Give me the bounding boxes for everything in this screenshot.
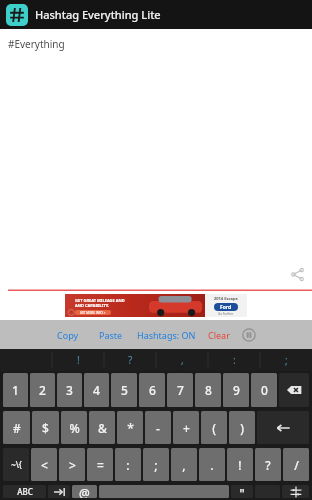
- button[interactable]: =: [87, 448, 113, 481]
- staticText: ;: [285, 353, 288, 367]
- staticText: :: [126, 457, 130, 473]
- staticText: ~\{: [11, 459, 22, 470]
- staticText: (: [212, 420, 216, 436]
- staticText: Copy: [57, 329, 79, 341]
- button[interactable]: ?: [104, 349, 156, 371]
- button[interactable]: 1: [3, 373, 28, 407]
- staticText: Hashtags: ON: [137, 329, 196, 341]
- button[interactable]: Keyboard settings: [282, 485, 309, 498]
- button[interactable]: /: [283, 448, 309, 481]
- staticText: -: [156, 420, 160, 436]
- staticText: GET MORE INFO >: [80, 311, 106, 315]
- button[interactable]: Enter: [257, 411, 309, 444]
- button[interactable]: <: [31, 448, 57, 481]
- staticText: 5: [121, 382, 128, 398]
- button[interactable]: ABC: [3, 485, 46, 498]
- button[interactable]: 4: [84, 373, 109, 407]
- button[interactable]: Advertisement: [65, 294, 247, 317]
- staticText: Paste: [99, 329, 123, 341]
- button[interactable]: ;: [260, 349, 312, 371]
- staticText: ABC: [17, 486, 33, 497]
- staticText: %: [69, 420, 80, 436]
- button[interactable]: (: [201, 411, 227, 444]
- button[interactable]: #: [3, 411, 30, 444]
- button[interactable]: $: [32, 411, 59, 444]
- button[interactable]: Hashtags: ON: [135, 325, 198, 345]
- staticText: AND CAPABILITY.: [75, 303, 110, 308]
- button[interactable]: &: [89, 411, 115, 444]
- staticText: $: [42, 420, 49, 436]
- staticText: 7: [177, 382, 184, 398]
- button[interactable]: 8: [195, 373, 221, 407]
- staticText: 1: [12, 382, 19, 398]
- button[interactable]: ~\{: [3, 448, 29, 481]
- staticText: 2014 Escape: [214, 296, 238, 301]
- staticText: .: [210, 457, 214, 473]
- staticText: GET GREAT MILEAGE AND: [75, 298, 125, 303]
- staticText: @: [79, 485, 90, 498]
- staticText: ?: [265, 457, 271, 473]
- staticText: Hashtag Everything Lite: [35, 7, 161, 22]
- staticText: #Everything: [8, 37, 65, 51]
- staticText: :: [233, 353, 236, 367]
- staticText: ,: [181, 353, 184, 367]
- button[interactable]: .: [199, 448, 225, 481]
- button[interactable]: 0: [251, 373, 277, 407]
- button[interactable]: %: [61, 411, 87, 444]
- staticText: !: [238, 457, 242, 473]
- button[interactable]: Tab: [48, 485, 70, 498]
- button[interactable]: Backspace: [279, 373, 309, 407]
- staticText: <: [41, 457, 48, 473]
- staticText: ;: [154, 457, 158, 473]
- button[interactable]: >: [59, 448, 85, 481]
- staticText: 2: [39, 382, 46, 398]
- button[interactable]: Copy: [55, 325, 81, 345]
- staticText: >: [69, 457, 76, 473]
- button[interactable]: +: [173, 411, 199, 444]
- staticText: 4: [93, 382, 100, 398]
- button[interactable]: !: [227, 448, 253, 481]
- button[interactable]: ;: [143, 448, 169, 481]
- button[interactable]: ): [229, 411, 255, 444]
- button[interactable]: !: [52, 349, 104, 371]
- button[interactable]: 3: [57, 373, 82, 407]
- button[interactable]: ,: [156, 349, 208, 371]
- button[interactable]: 7: [167, 373, 193, 407]
- button[interactable]: -: [145, 411, 171, 444]
- button[interactable]: More options: [240, 326, 258, 344]
- button[interactable]: :: [208, 349, 260, 371]
- button[interactable]: Paste: [97, 325, 125, 345]
- staticText: Go Further: [218, 312, 234, 316]
- staticText: +: [183, 420, 190, 436]
- staticText: Clear: [208, 329, 230, 341]
- staticText: Ford: [220, 304, 232, 311]
- staticText: ?: [128, 353, 133, 367]
- staticText: 6: [149, 382, 156, 398]
- staticText: 3: [66, 382, 73, 398]
- button[interactable]: 9: [223, 373, 249, 407]
- button[interactable]: 5: [111, 373, 137, 407]
- staticText: =: [97, 457, 104, 473]
- staticText: !: [77, 353, 80, 367]
- staticText: 8: [205, 382, 212, 398]
- staticText: ): [240, 420, 244, 436]
- button[interactable]: ": [231, 485, 253, 498]
- staticText: &: [98, 420, 107, 436]
- button[interactable]: ,: [171, 448, 197, 481]
- button[interactable]: ?: [255, 448, 281, 481]
- button[interactable]: 6: [139, 373, 165, 407]
- button[interactable]: Share: [288, 265, 306, 283]
- staticText: /: [294, 457, 299, 473]
- staticText: ,: [182, 457, 186, 473]
- button[interactable]: 2: [30, 373, 55, 407]
- staticText: #: [13, 420, 21, 436]
- button[interactable]: *: [117, 411, 143, 444]
- button[interactable]: :: [115, 448, 141, 481]
- button[interactable]: Clear: [206, 325, 232, 345]
- staticText: ": [239, 485, 245, 498]
- button[interactable]: @: [72, 485, 97, 498]
